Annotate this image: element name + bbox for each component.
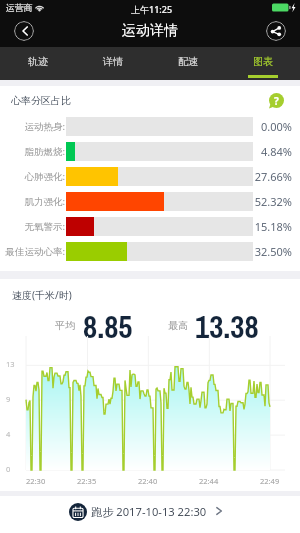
staticText: 肌力强化: — [0, 195, 65, 208]
staticText: ? — [274, 94, 279, 108]
staticText: 13.38 — [195, 306, 259, 340]
staticText: 22:40 — [138, 476, 158, 486]
staticText: 配速 — [178, 55, 198, 68]
staticText: 22:44 — [199, 476, 219, 486]
staticText: 8.85 — [83, 306, 133, 340]
button[interactable]: 详情 — [75, 47, 150, 80]
staticText: 13 — [6, 359, 15, 369]
staticText: 最高 — [168, 319, 188, 332]
staticText: 52.32% — [253, 194, 292, 209]
staticText: 22:35 — [77, 476, 97, 486]
button[interactable]: 跑步 2017-10-13 22:30 — [0, 496, 300, 533]
staticText: 32.50% — [253, 244, 292, 259]
staticText: 22:30 — [26, 476, 46, 486]
staticText: 轨迹 — [28, 55, 48, 68]
staticText: 15.18% — [253, 219, 292, 234]
staticText: 详情 — [103, 55, 123, 68]
button[interactable]: 配速 — [150, 47, 225, 80]
staticText: 0 — [6, 464, 11, 474]
staticText: 最佳运动心率: — [0, 245, 65, 258]
staticText: 平均 — [55, 319, 75, 332]
staticText: 心肺强化: — [0, 170, 65, 183]
staticText: 9 — [6, 394, 11, 404]
staticText: 无氧警示: — [0, 220, 65, 233]
button[interactable]: 轨迹 — [0, 47, 75, 80]
staticText: 图表 — [253, 55, 273, 68]
staticText: 27.66% — [253, 169, 292, 184]
button[interactable]: Back — [14, 21, 34, 41]
button[interactable]: Share — [266, 21, 286, 41]
staticText: 0.00% — [253, 119, 292, 134]
staticText: 心率分区占比 — [11, 94, 71, 107]
other: Open activity — [214, 506, 224, 516]
staticText: 4 — [6, 429, 11, 439]
staticText: 运营商 — [6, 3, 33, 14]
staticText: 运动热身: — [0, 120, 65, 133]
staticText: 4.84% — [253, 144, 292, 159]
staticText: 脂肪燃烧: — [0, 145, 65, 158]
button[interactable]: 图表 — [225, 47, 300, 80]
button[interactable]: Help — [269, 93, 284, 108]
staticText: 跑步 2017-10-13 22:30 — [91, 504, 207, 519]
staticText: 上午11:25 — [131, 3, 173, 15]
staticText: 运动详情 — [122, 22, 178, 40]
staticText: 22:49 — [260, 476, 280, 486]
staticText: 速度(千米/时) — [12, 288, 72, 302]
